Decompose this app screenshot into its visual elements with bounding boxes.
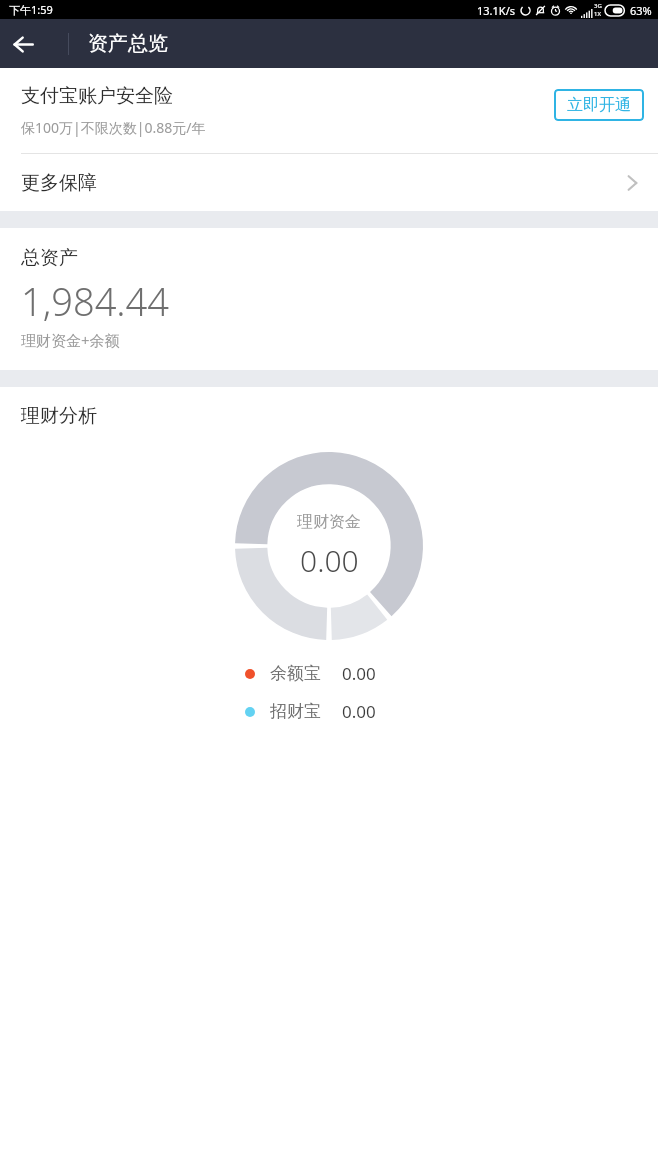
staticText: 理财资金+余额: [21, 330, 120, 350]
staticText: 0.00: [300, 540, 359, 581]
button[interactable]: 支付宝账户安全险: [0, 68, 658, 153]
button[interactable]: 更多保障: [0, 154, 658, 211]
staticText: 0.00: [342, 662, 376, 685]
staticText: 理财分析: [21, 404, 97, 428]
staticText: 总资产: [21, 246, 78, 270]
staticText: 理财资金: [297, 512, 361, 532]
staticText: 13.1K/s: [477, 3, 515, 18]
button[interactable]: 立即开通: [554, 89, 644, 121]
staticText: 立即开通: [567, 95, 631, 115]
staticText: 63%: [630, 3, 652, 18]
button[interactable]: 余额宝: [0, 662, 658, 685]
staticText: 支付宝账户安全险: [21, 84, 173, 108]
staticText: 1X: [594, 10, 601, 18]
staticText: 余额宝: [270, 663, 321, 684]
staticText: 资产总览: [88, 31, 168, 56]
staticText: 更多保障: [21, 171, 97, 195]
staticText: 下午1:59: [9, 2, 53, 17]
staticText: 1,984.44: [21, 275, 170, 327]
staticText: 招财宝: [270, 701, 321, 722]
staticText: 3G: [594, 2, 602, 10]
staticText: 保100万|不限次数|0.88元/年: [21, 118, 206, 137]
staticText: 0.00: [342, 700, 376, 723]
button[interactable]: 返回: [0, 21, 46, 67]
button[interactable]: 招财宝: [0, 700, 658, 723]
